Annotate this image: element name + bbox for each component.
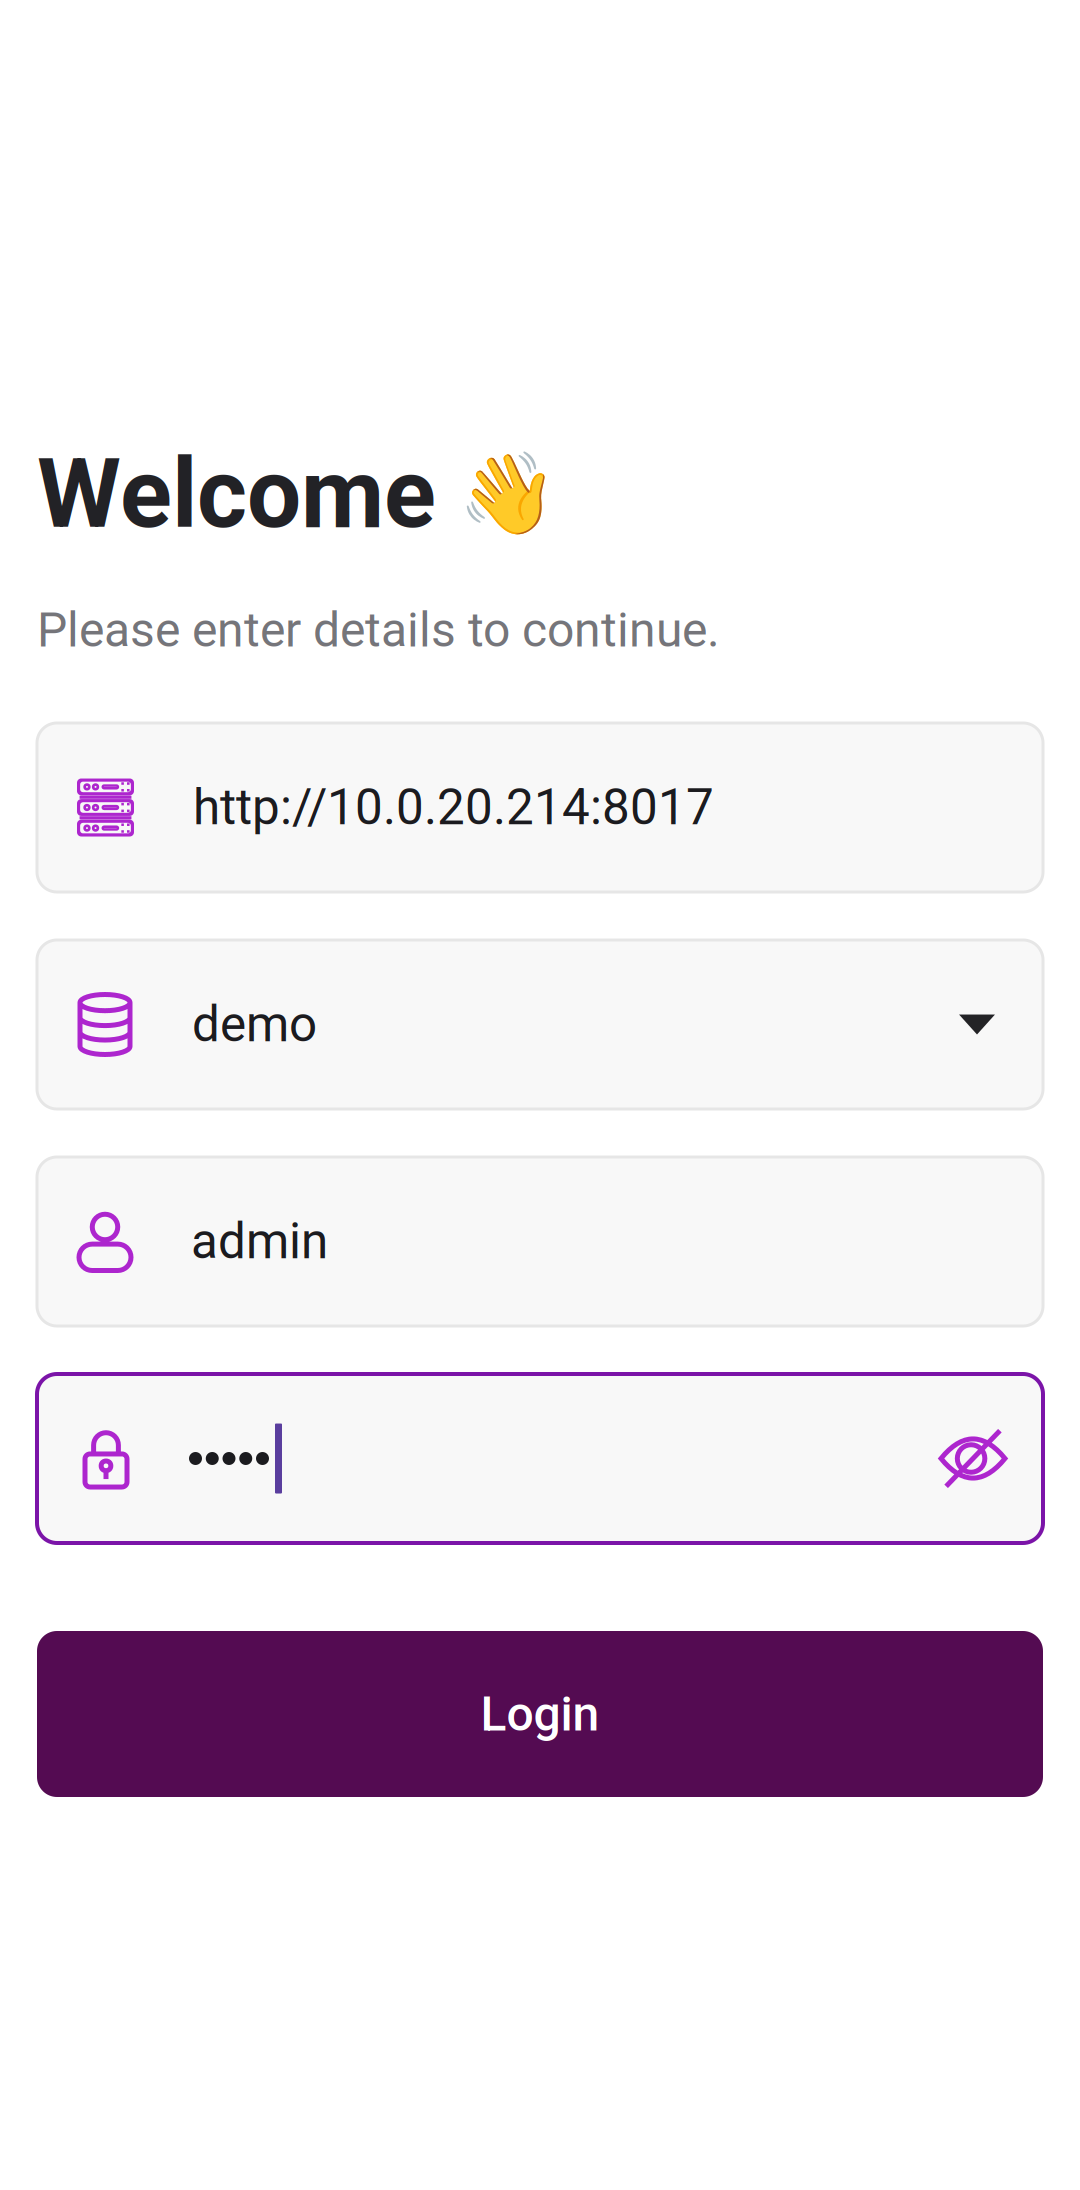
staticText: http://10.0.20.214:8017 xyxy=(193,779,714,836)
staticText: Welcome xyxy=(37,438,436,550)
button[interactable]: Show password xyxy=(925,1413,1021,1503)
staticText: 👋 xyxy=(458,447,558,541)
staticText: Please enter details to continue. xyxy=(37,602,720,658)
staticText: admin xyxy=(191,1213,328,1270)
staticText: demo xyxy=(192,996,317,1053)
button[interactable]: demo xyxy=(37,940,1043,1109)
button[interactable]: http://10.0.20.214:8017 xyxy=(37,723,1043,892)
staticText: Login xyxy=(480,1686,599,1742)
button[interactable]: admin xyxy=(37,1157,1043,1326)
button[interactable]: Login xyxy=(37,1631,1043,1797)
